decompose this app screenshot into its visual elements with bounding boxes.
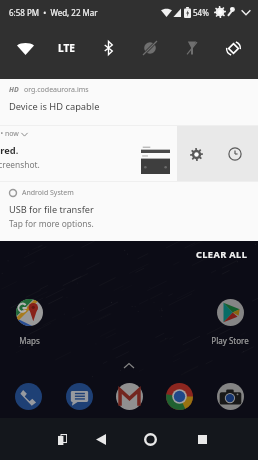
button[interactable]: Wi-Fi: [8, 31, 42, 65]
button[interactable]: Maps: [6, 299, 52, 346]
staticText: Screenshot • now: [0, 129, 21, 139]
button[interactable]: All apps: [120, 360, 138, 370]
button[interactable]: Snooze: [220, 139, 250, 169]
staticText: USB for file transfer: [9, 203, 94, 216]
button[interactable]: Screenshot • now: [0, 126, 177, 181]
button[interactable]: Android System: [0, 182, 258, 241]
staticText: Tap for more options.: [9, 218, 94, 229]
button[interactable]: Auto rotate: [216, 31, 250, 65]
button[interactable]: Chrome: [157, 381, 201, 411]
button[interactable]: Home: [133, 421, 167, 457]
button[interactable]: Phone: [6, 381, 50, 411]
staticText: Android System: [22, 188, 74, 198]
staticText: Screenshot captured.: [0, 144, 19, 157]
button[interactable]: Recent apps: [45, 421, 79, 457]
button[interactable]: Back: [84, 421, 118, 457]
button[interactable]: Gmail: [107, 381, 151, 411]
button[interactable]: Stop: [185, 421, 219, 457]
button[interactable]: Flashlight: [175, 31, 209, 65]
staticText: LTE: [58, 41, 75, 55]
button[interactable]: CLEAR ALL: [186, 243, 258, 266]
staticText: CLEAR ALL: [196, 248, 248, 261]
staticText: 6:58 PM • Wed, 22 Mar: [9, 7, 98, 18]
staticText: 54%: [193, 7, 209, 18]
button[interactable]: Notification settings: [181, 139, 211, 169]
staticText: org.codeaurora.ims: [24, 85, 89, 95]
staticText: Tap to view your screenshot.: [0, 159, 40, 170]
button[interactable]: Do not disturb: [133, 31, 167, 65]
staticText: Play Store: [211, 335, 249, 346]
button[interactable]: Mobile data LTE: [49, 31, 83, 65]
button[interactable]: HD: [0, 79, 258, 125]
button[interactable]: Play Store: [207, 299, 253, 346]
staticText: HD: [9, 85, 19, 95]
button[interactable]: Messages: [57, 381, 101, 411]
button[interactable]: Bluetooth: [91, 31, 125, 65]
staticText: Device is HD capable: [9, 100, 100, 113]
button[interactable]: Camera: [208, 381, 252, 411]
staticText: Maps: [19, 335, 40, 346]
